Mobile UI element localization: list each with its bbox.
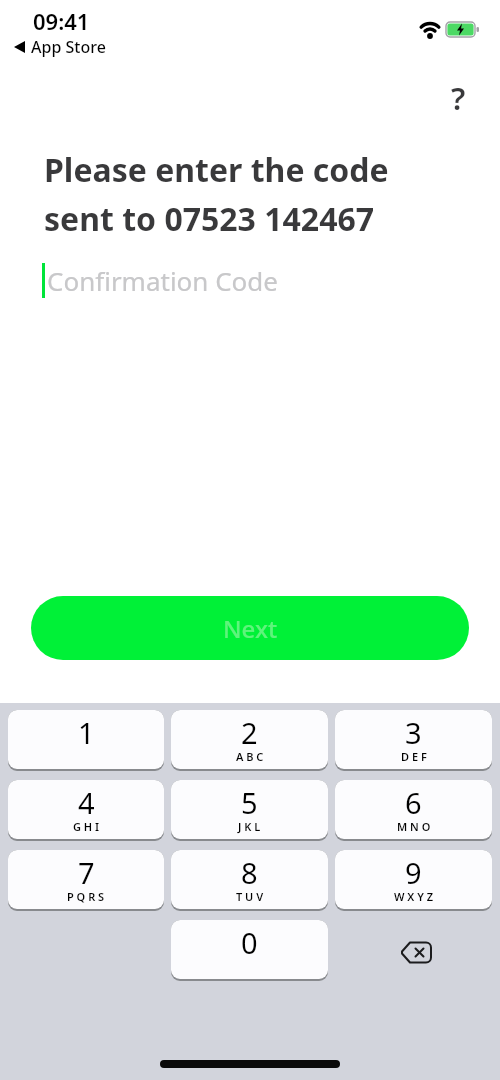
staticText: 6 [405, 783, 422, 822]
button[interactable]: 0 [171, 920, 328, 979]
staticText: 5 [241, 783, 258, 822]
staticText: App Store [31, 36, 106, 58]
button[interactable]: 1 [8, 710, 164, 769]
staticText: Please enter the code sent to 07523 1424… [44, 148, 389, 240]
staticText: P Q R S [67, 889, 105, 904]
button[interactable]: ? [436, 76, 480, 120]
button[interactable]: Next [31, 596, 469, 660]
button[interactable]: 9 [335, 850, 492, 909]
button[interactable]: 5 [171, 780, 328, 839]
staticText: A B C [236, 749, 264, 764]
button[interactable]: Confirmation Code [42, 260, 278, 300]
staticText: T U V [236, 889, 264, 904]
staticText: 4 [78, 783, 95, 822]
staticText: 9 [405, 853, 422, 892]
staticText: 8 [241, 853, 258, 892]
staticText: ? [451, 77, 466, 119]
staticText: M N O [397, 819, 431, 834]
staticText: W X Y Z [394, 889, 434, 904]
staticText: G H I [73, 819, 100, 834]
staticText: Confirmation Code [47, 263, 278, 298]
staticText: 3 [405, 713, 422, 752]
button[interactable]: 6 [335, 780, 492, 839]
button[interactable]: 7 [8, 850, 164, 909]
button[interactable] [335, 920, 492, 981]
staticText: 0 [241, 923, 258, 962]
staticText: 7 [78, 853, 95, 892]
button[interactable]: 8 [171, 850, 328, 909]
staticText: 09:41 [33, 6, 90, 36]
staticText: 1 [78, 713, 95, 752]
staticText: 2 [241, 713, 258, 752]
staticText: Next [223, 612, 278, 645]
button[interactable]: 4 [8, 780, 164, 839]
staticText: D E F [401, 749, 427, 764]
button[interactable]: 2 [171, 710, 328, 769]
button[interactable]: 3 [335, 710, 492, 769]
staticText: J K L [238, 819, 261, 834]
